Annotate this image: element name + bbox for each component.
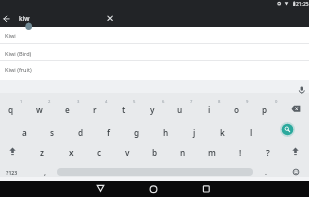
staticText: Kiwi (fruit) [5, 66, 32, 74]
button[interactable]: ?123 [0, 166, 24, 178]
staticText: y [150, 104, 155, 115]
button[interactable] [292, 147, 300, 156]
staticText: t [122, 104, 126, 115]
staticText: o [234, 104, 240, 115]
staticText: d [78, 127, 84, 138]
staticText: 9 [246, 99, 249, 105]
staticText: k [220, 127, 225, 138]
staticText: , [44, 167, 47, 177]
staticText: x [69, 147, 74, 158]
staticText: j [193, 127, 196, 138]
button[interactable]: q [0, 101, 23, 117]
staticText: 3 [77, 99, 80, 105]
button[interactable]: j [182, 124, 206, 140]
button[interactable]: Kiwi [0, 27, 309, 44]
button[interactable] [292, 168, 300, 176]
staticText: . [265, 167, 267, 177]
button[interactable] [94, 182, 107, 195]
staticText: 6 [162, 99, 165, 105]
staticText: 21:25 [296, 1, 309, 8]
button[interactable]: , [39, 166, 51, 178]
staticText: c [97, 147, 102, 158]
button[interactable]: ! [228, 144, 252, 160]
button[interactable]: . [260, 166, 272, 178]
staticText: 0 [275, 99, 278, 105]
button[interactable]: n [171, 144, 195, 160]
staticText: w [36, 104, 43, 115]
button[interactable] [297, 85, 307, 95]
staticText: 8 [218, 99, 221, 105]
staticText: i [208, 104, 211, 115]
staticText: a [22, 127, 27, 138]
button[interactable]: t [112, 101, 136, 117]
button[interactable] [147, 183, 160, 196]
staticText: 5 [133, 99, 136, 105]
staticText: v [125, 147, 130, 158]
staticText: b [152, 147, 158, 158]
button[interactable]: p [253, 101, 277, 117]
staticText: m [208, 147, 216, 158]
staticText: h [163, 127, 169, 138]
staticText: r [93, 104, 97, 115]
staticText: 1 [20, 99, 23, 105]
button[interactable]: ? [256, 144, 280, 160]
button[interactable]: x [59, 144, 83, 160]
button[interactable]: d [69, 124, 93, 140]
button[interactable] [277, 119, 298, 140]
button[interactable]: Kiwi (fruit) [0, 61, 309, 78]
button[interactable]: e [55, 101, 79, 117]
button[interactable] [200, 182, 213, 195]
button[interactable] [9, 147, 17, 156]
staticText: ? [266, 147, 270, 158]
staticText: 4 [105, 99, 108, 105]
button[interactable]: g [125, 124, 149, 140]
staticText: n [180, 147, 186, 158]
staticText: kiw [19, 14, 30, 23]
staticText: f [107, 127, 111, 138]
button[interactable] [291, 105, 301, 113]
button[interactable]: w [27, 101, 51, 117]
staticText: 7 [190, 99, 193, 105]
button[interactable]: u [168, 101, 192, 117]
button[interactable]: m [200, 144, 224, 160]
button[interactable]: y [140, 101, 164, 117]
staticText: q [8, 104, 14, 115]
staticText: s [50, 127, 55, 138]
button[interactable]: s [40, 124, 64, 140]
staticText: e [65, 104, 70, 115]
staticText: z [40, 147, 44, 158]
button[interactable]: i [197, 101, 221, 117]
button[interactable] [105, 13, 115, 23]
button[interactable]: v [115, 144, 139, 160]
button[interactable]: c [87, 144, 111, 160]
staticText: ?123 [6, 169, 18, 176]
button[interactable] [2, 14, 12, 24]
staticText: p [262, 104, 268, 115]
staticText: u [177, 104, 183, 115]
staticText: 2 [48, 99, 51, 105]
button[interactable]: h [154, 124, 178, 140]
button[interactable]: o [225, 101, 249, 117]
button[interactable]: b [143, 144, 167, 160]
staticText: ! [239, 147, 242, 158]
staticText: Kiwi [5, 32, 16, 40]
button[interactable]: l [239, 124, 263, 140]
button[interactable]: f [97, 124, 121, 140]
staticText: Kiwi (Bird) [5, 50, 32, 58]
button[interactable]: z [30, 144, 54, 160]
button[interactable]: k [210, 124, 234, 140]
button[interactable]: Kiwi (Bird) [0, 45, 309, 62]
staticText: l [250, 127, 253, 138]
button[interactable]: a [12, 124, 36, 140]
button[interactable]: r [83, 101, 107, 117]
staticText: g [134, 127, 140, 138]
